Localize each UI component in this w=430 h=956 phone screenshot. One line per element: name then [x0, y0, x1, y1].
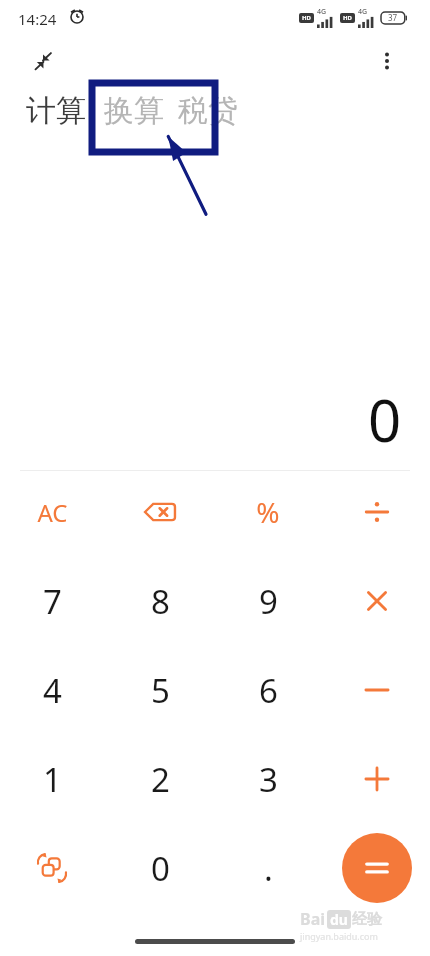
staticText: 0	[368, 380, 402, 458]
staticText: 换算	[104, 92, 164, 130]
button[interactable]: AC	[8, 476, 96, 548]
button[interactable]: 换算	[104, 92, 164, 130]
staticText: 8	[151, 579, 170, 624]
button[interactable]: 0	[116, 832, 204, 904]
button[interactable]: 3	[224, 743, 312, 815]
staticText: 1	[43, 757, 62, 802]
staticText: jingyan.baidu.com	[300, 930, 378, 942]
button[interactable]: 计算	[26, 92, 86, 130]
staticText: 3	[259, 757, 278, 802]
staticText: HD	[302, 14, 311, 22]
button[interactable]: Unit conversion	[8, 832, 96, 904]
staticText: %	[256, 493, 280, 531]
button[interactable]: Collapse	[28, 46, 58, 76]
button[interactable]: 1	[8, 743, 96, 815]
button[interactable]: 税贷	[178, 92, 238, 130]
button[interactable]: 5	[116, 654, 204, 726]
staticText: 税贷	[178, 92, 238, 130]
staticText: 4G	[317, 7, 327, 17]
button[interactable]: Backspace	[116, 476, 204, 548]
staticText: HD	[343, 14, 352, 22]
staticText: 14:24	[18, 9, 57, 29]
staticText: 0	[151, 846, 170, 891]
button[interactable]: 7	[8, 565, 96, 637]
button[interactable]: .	[224, 832, 312, 904]
button[interactable]: 2	[116, 743, 204, 815]
button[interactable]: 6	[224, 654, 312, 726]
staticText: 经验	[352, 910, 382, 929]
button[interactable]: 4	[8, 654, 96, 726]
button[interactable]: Equals	[342, 833, 412, 903]
button[interactable]: Plus	[333, 743, 421, 815]
staticText: du	[330, 910, 348, 929]
button[interactable]: Divide	[333, 476, 421, 548]
staticText: 37	[388, 12, 398, 23]
button[interactable]: Minus	[333, 654, 421, 726]
staticText: AC	[37, 496, 68, 529]
staticText: 2	[151, 757, 170, 802]
staticText: .	[264, 846, 273, 891]
staticText: 4	[43, 668, 62, 713]
button[interactable]: 8	[116, 565, 204, 637]
button[interactable]: %	[224, 476, 312, 548]
staticText: 7	[43, 579, 62, 624]
staticText: Bai	[300, 908, 326, 930]
staticText: 5	[151, 668, 170, 713]
staticText: 9	[259, 579, 278, 624]
staticText: 6	[259, 668, 278, 713]
button[interactable]: More options	[370, 44, 404, 78]
button[interactable]: Multiply	[333, 565, 421, 637]
staticText: 计算	[26, 92, 86, 130]
staticText: 4G	[358, 7, 368, 17]
button[interactable]: 9	[224, 565, 312, 637]
